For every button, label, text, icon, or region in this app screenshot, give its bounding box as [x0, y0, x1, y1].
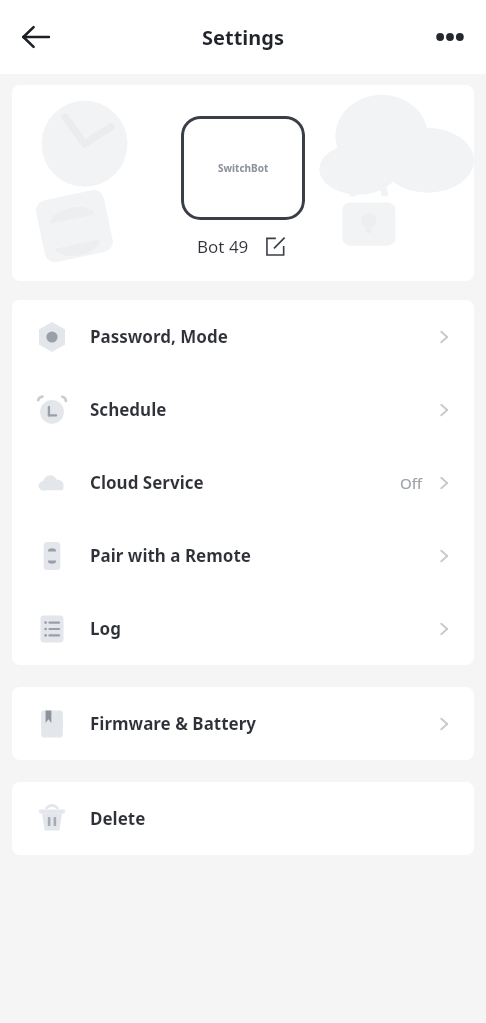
- staticText: Settings: [202, 24, 284, 51]
- button[interactable]: Rename device: [261, 232, 289, 260]
- button[interactable]: More options: [422, 9, 478, 65]
- staticText: Pair with a Remote: [90, 544, 251, 567]
- staticText: Bot 49: [197, 235, 249, 258]
- staticText: Cloud Service: [90, 471, 204, 494]
- button[interactable]: Pair with a Remote: [12, 519, 474, 592]
- button[interactable]: Password, Mode: [12, 300, 474, 373]
- button[interactable]: Firmware & Battery: [12, 687, 474, 760]
- staticText: Delete: [90, 807, 146, 830]
- button[interactable]: Cloud Service: [12, 446, 474, 519]
- staticText: Firmware & Battery: [90, 712, 257, 735]
- staticText: Password, Mode: [90, 325, 228, 348]
- staticText: Log: [90, 617, 121, 640]
- staticText: Schedule: [90, 398, 167, 421]
- staticText: Off: [400, 473, 423, 493]
- button[interactable]: Delete: [12, 782, 474, 855]
- button[interactable]: Log: [12, 592, 474, 665]
- staticText: SwitchBot: [218, 161, 269, 175]
- button[interactable]: Schedule: [12, 373, 474, 446]
- button[interactable]: Back: [10, 11, 62, 63]
